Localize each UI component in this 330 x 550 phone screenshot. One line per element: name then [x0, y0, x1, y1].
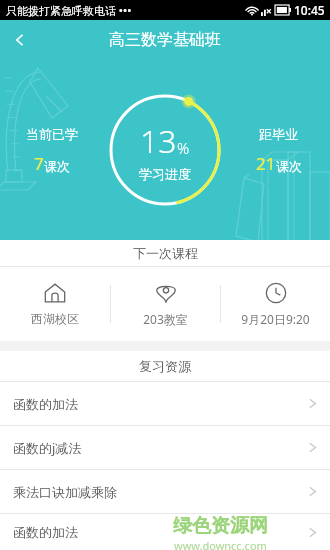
- staticText: 绿色资源网: [173, 514, 268, 538]
- staticText: %: [177, 138, 190, 158]
- staticText: 只能拨打紧急呼救电话 •••: [6, 3, 132, 18]
- button[interactable]: 函数的加法: [0, 382, 330, 425]
- button[interactable]: 9月20日9:20: [221, 282, 330, 327]
- staticText: www.downcc.com: [174, 538, 267, 550]
- button[interactable]: 绿色资源网: [0, 514, 330, 550]
- staticText: 学习进度: [139, 166, 191, 182]
- staticText: 21: [256, 152, 276, 175]
- staticText: 13: [140, 119, 177, 163]
- button[interactable]: 203教室: [111, 282, 220, 327]
- staticText: 10:45: [294, 2, 325, 18]
- staticText: 课次: [276, 158, 302, 174]
- staticText: 7: [34, 152, 44, 175]
- button[interactable]: 函数的j减法: [0, 426, 330, 469]
- staticText: 9月20日9:20: [241, 311, 310, 327]
- staticText: 复习资源: [139, 358, 191, 374]
- button[interactable]: 西湖校区: [0, 282, 110, 326]
- staticText: 函数的加法: [13, 396, 78, 412]
- staticText: 函数的加法: [13, 524, 78, 540]
- staticText: 203教室: [143, 311, 188, 327]
- staticText: 距毕业: [259, 126, 298, 142]
- staticText: 课次: [44, 158, 70, 174]
- staticText: 高三数学基础班: [109, 30, 221, 50]
- button[interactable]: Back: [0, 20, 40, 60]
- staticText: 当前已学: [26, 126, 78, 142]
- staticText: 函数的j减法: [13, 439, 82, 457]
- button[interactable]: 乘法口诀加减乘除: [0, 470, 330, 513]
- staticText: 下一次课程: [133, 245, 198, 261]
- staticText: 乘法口诀加减乘除: [13, 484, 117, 500]
- staticText: 西湖校区: [31, 311, 79, 326]
